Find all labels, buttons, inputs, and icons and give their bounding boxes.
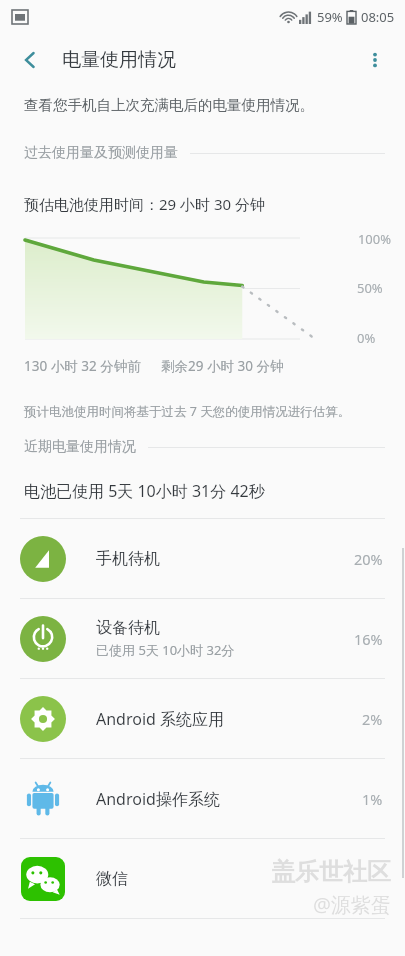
staticText: 16%: [354, 629, 383, 649]
button[interactable]: Back: [8, 38, 52, 82]
staticText: 已使用 5天 10小时 32分: [96, 641, 235, 659]
staticText: 08:05: [361, 8, 395, 26]
staticText: 设备待机: [96, 618, 160, 638]
staticText: 手机待机: [96, 549, 160, 569]
staticText: 130 小时 32 分钟前: [24, 357, 141, 375]
staticText: @源紫蛋: [313, 891, 391, 918]
staticText: 59%: [317, 8, 343, 26]
button[interactable]: Android操作系统: [0, 759, 405, 838]
staticText: 电量使用情况: [62, 48, 176, 72]
staticText: 50%: [357, 279, 383, 297]
staticText: 1%: [362, 789, 383, 809]
staticText: 查看您手机自上次充满电后的电量使用情况。: [24, 96, 314, 114]
staticText: 20%: [354, 549, 383, 569]
staticText: 0%: [357, 329, 376, 347]
button[interactable]: More options: [353, 38, 397, 82]
button[interactable]: 设备待机: [0, 599, 405, 678]
staticText: Android操作系统: [96, 788, 220, 810]
staticText: 微信: [96, 869, 128, 889]
staticText: 剩余29 小时 30 分钟: [161, 357, 284, 375]
button[interactable]: 微信: [0, 839, 405, 918]
staticText: 过去使用量及预测使用量: [24, 144, 178, 162]
staticText: 预计电池使用时间将基于过去 7 天您的使用情况进行估算。: [24, 403, 351, 420]
button[interactable]: 手机待机: [0, 519, 405, 598]
button[interactable]: Android 系统应用: [0, 679, 405, 758]
staticText: 盖乐世社区: [271, 857, 391, 887]
staticText: 100%: [357, 230, 391, 248]
staticText: 预估电池使用时间：29 小时 30 分钟: [24, 194, 266, 214]
staticText: 2%: [362, 709, 383, 729]
staticText: Android 系统应用: [96, 708, 225, 730]
staticText: 近期电量使用情况: [24, 438, 136, 456]
staticText: 电池已使用 5天 10小时 31分 42秒: [24, 480, 265, 502]
